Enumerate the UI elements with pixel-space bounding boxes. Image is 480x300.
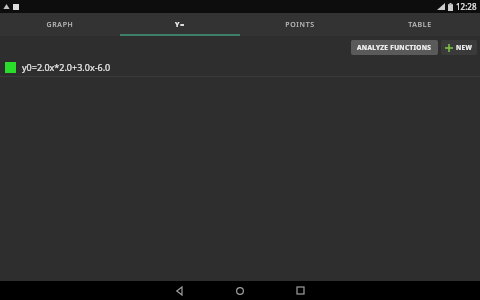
- button[interactable]: Home: [226, 281, 254, 300]
- button[interactable]: Recent apps: [286, 281, 314, 300]
- staticText: NEW: [456, 43, 473, 52]
- button[interactable]: POINTS: [240, 13, 360, 36]
- button[interactable]: Y=: [120, 13, 240, 36]
- button[interactable]: TABLE: [360, 13, 480, 36]
- staticText: POINTS: [285, 20, 315, 30]
- button[interactable]: ANALYZE FUNCTIONS: [351, 40, 438, 55]
- staticText: TABLE: [408, 20, 432, 30]
- button[interactable]: NEW: [441, 40, 477, 55]
- button[interactable]: GRAPH: [0, 13, 120, 36]
- button[interactable]: y0=2.0x*2.0+3.0x-6.0: [0, 58, 480, 76]
- staticText: Y=: [175, 20, 185, 30]
- button[interactable]: Back: [166, 281, 194, 300]
- staticText: ANALYZE FUNCTIONS: [357, 43, 432, 52]
- staticText: GRAPH: [46, 20, 74, 30]
- staticText: y0=2.0x*2.0+3.0x-6.0: [22, 61, 111, 73]
- staticText: 12:28: [456, 1, 477, 12]
